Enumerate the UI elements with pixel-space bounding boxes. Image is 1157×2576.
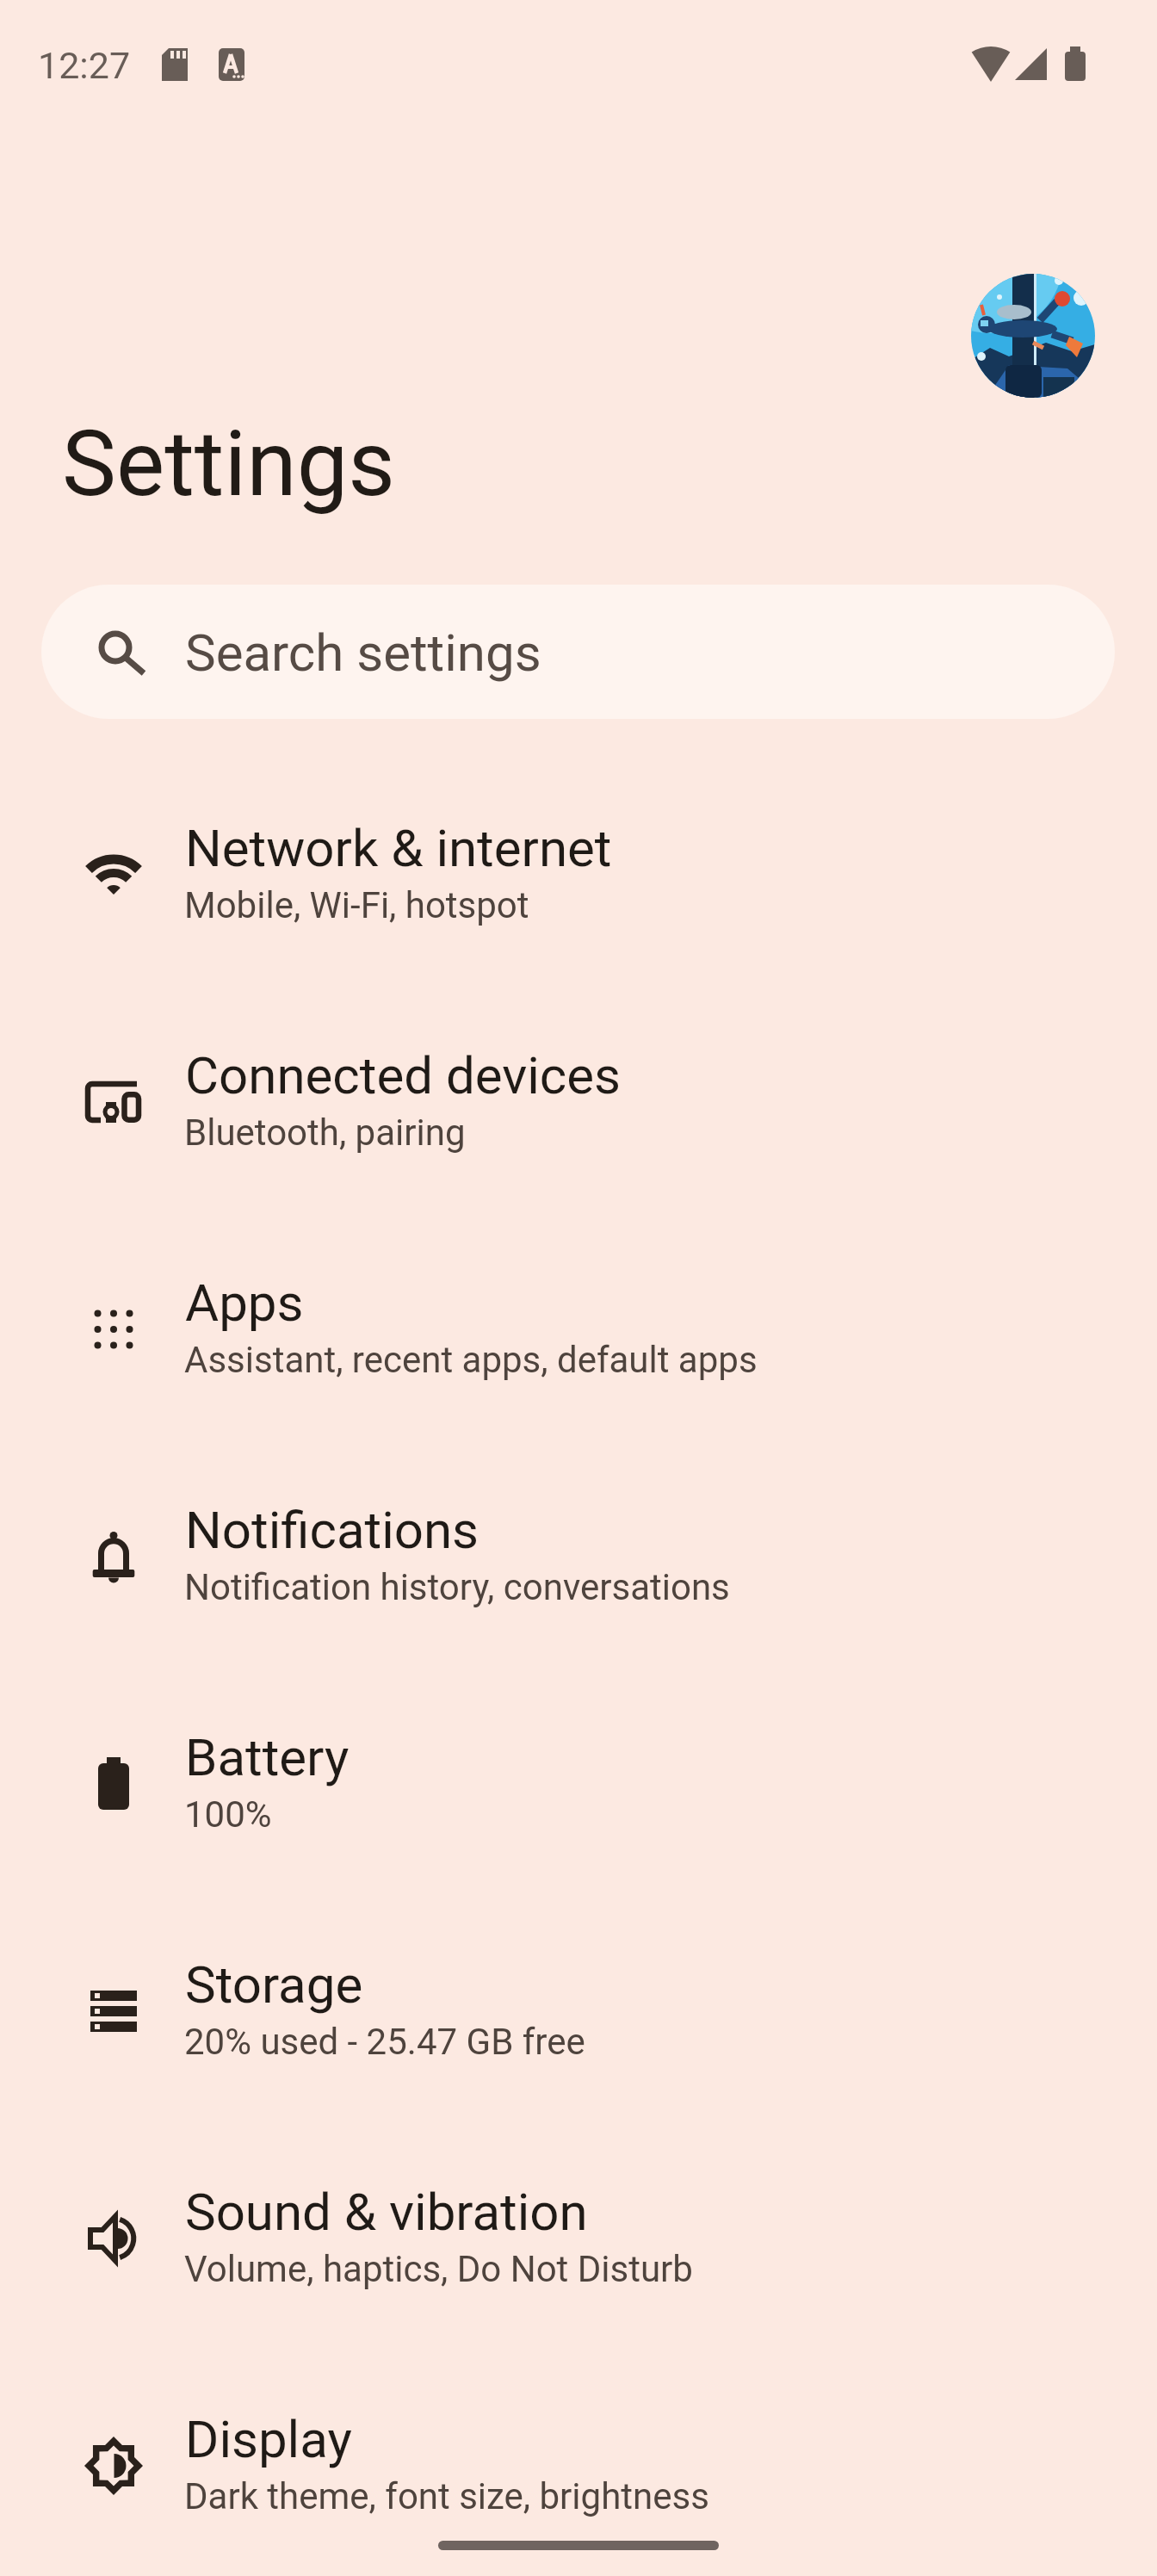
staticText: Storage (185, 1954, 363, 2015)
staticText: Search settings (185, 622, 541, 683)
staticText: Settings (62, 411, 396, 517)
staticText: Mobile, Wi-Fi, hotspot (184, 884, 529, 926)
button[interactable]: Network & internet (0, 765, 1157, 992)
button[interactable]: Connected devices (0, 992, 1157, 1219)
staticText: Notifications (185, 1500, 480, 1560)
staticText: Assistant, recent apps, default apps (184, 1339, 758, 1381)
staticText: 12:27 (38, 44, 131, 87)
staticText: Network & internet (185, 818, 612, 878)
staticText: Display (185, 2409, 352, 2469)
staticText: Apps (185, 1273, 304, 1333)
staticText: Battery (185, 1727, 350, 1787)
button[interactable]: Display (0, 2356, 1157, 2576)
button[interactable]: Storage (0, 1901, 1157, 2128)
button[interactable] (41, 585, 1115, 719)
staticText: Dark theme, font size, brightness (184, 2475, 709, 2517)
staticText: 20% used - 25.47 GB free (184, 2021, 585, 2063)
staticText: 100% (184, 1793, 272, 1836)
staticText: Volume, haptics, Do Not Disturb (184, 2248, 693, 2290)
staticText: Connected devices (185, 1045, 622, 1105)
staticText: Bluetooth, pairing (184, 1112, 466, 1154)
staticText: Sound & vibration (185, 2182, 588, 2242)
button[interactable]: Notifications (0, 1446, 1157, 1674)
button[interactable]: Sound & vibration (0, 2128, 1157, 2356)
button[interactable]: Battery (0, 1674, 1157, 1901)
button[interactable] (971, 274, 1095, 398)
staticText: Notification history, conversations (184, 1566, 730, 1608)
button[interactable]: Apps (0, 1219, 1157, 1446)
